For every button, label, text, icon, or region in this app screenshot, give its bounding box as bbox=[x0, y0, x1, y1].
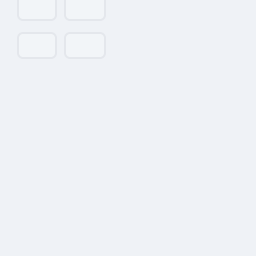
button[interactable]: Item bbox=[65, 33, 105, 58]
button[interactable]: Item bbox=[18, 0, 56, 20]
button[interactable]: Item bbox=[18, 33, 56, 58]
button[interactable]: Item bbox=[65, 0, 105, 20]
